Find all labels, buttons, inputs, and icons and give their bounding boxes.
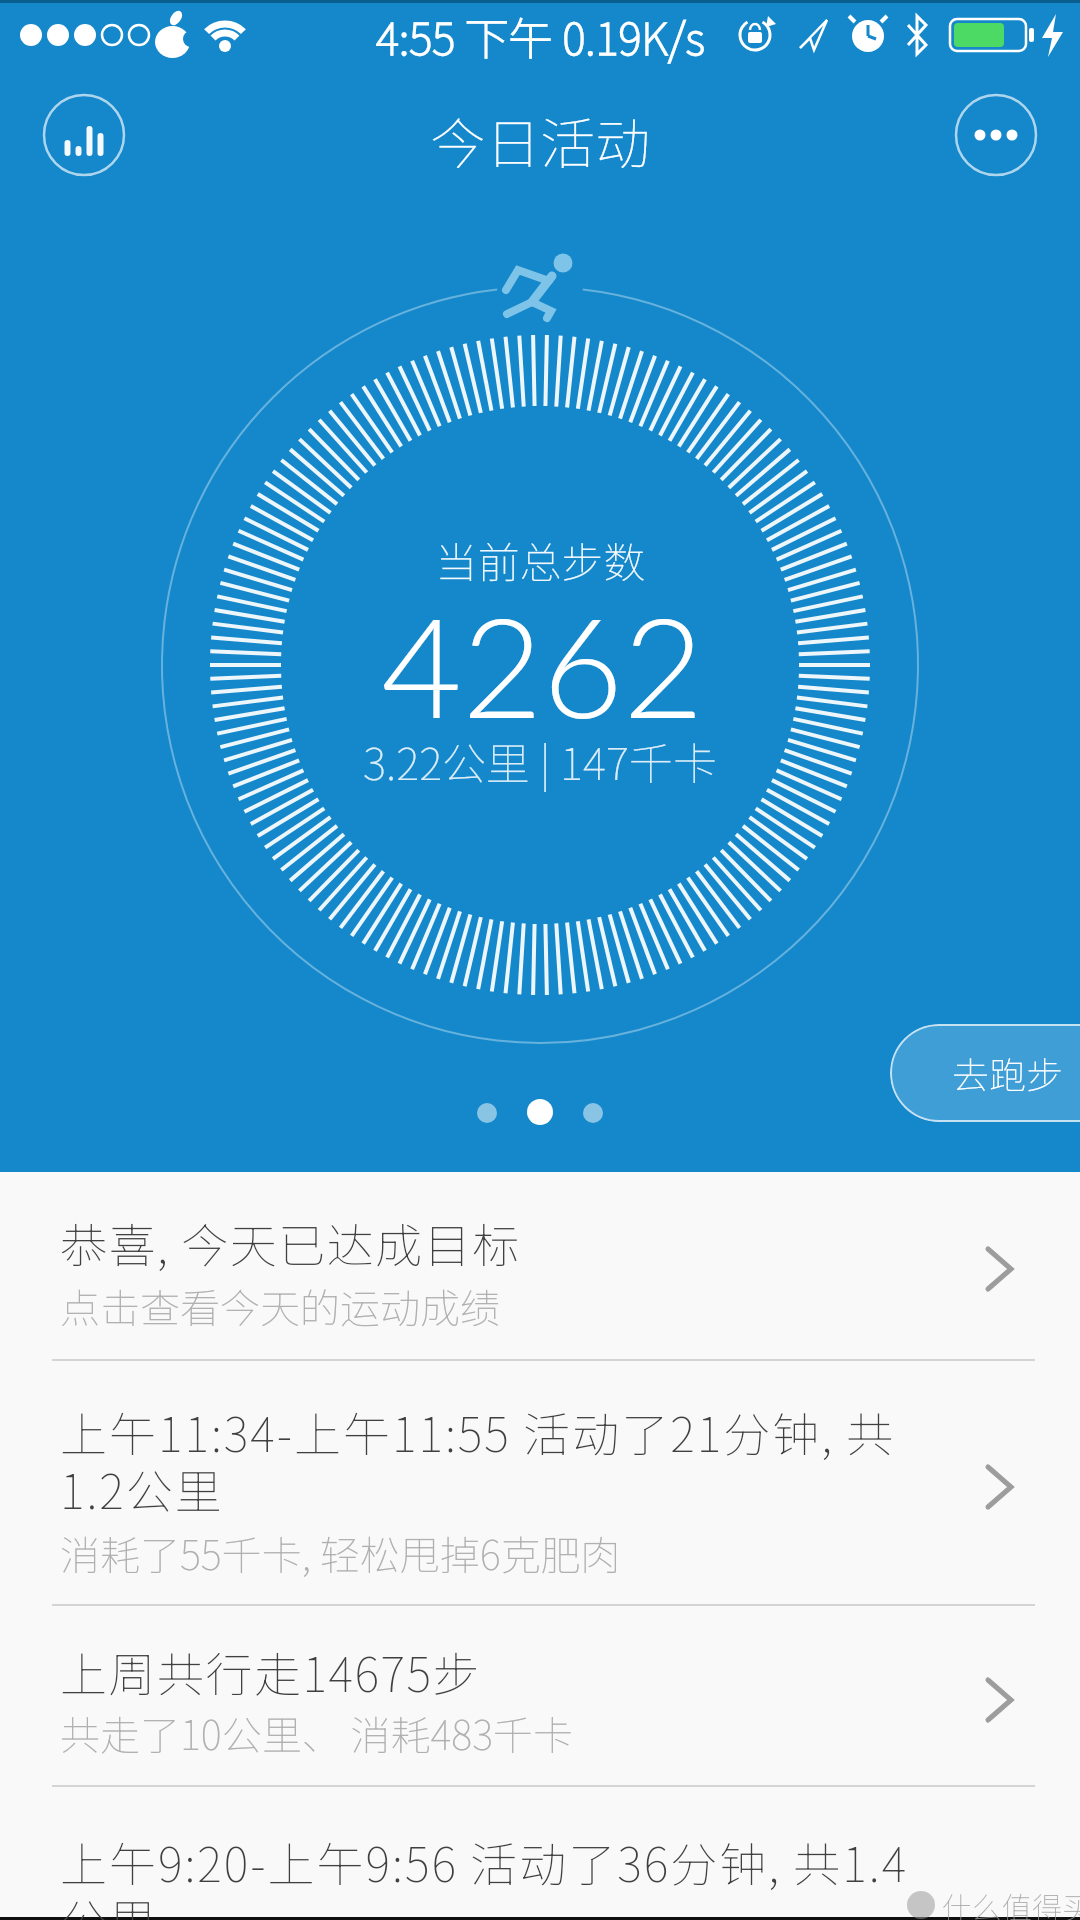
staticText: 恭喜, 今天已达成目标 [60,1208,521,1276]
staticText: 上午9:20-上午9:56 活动了36分钟, 共1.4 公里 [60,1827,909,1920]
button[interactable] [0,1606,1080,1786]
staticText: 今日活动 [430,100,651,180]
staticText: 消耗了55千卡, 轻松甩掉6克肥肉 [60,1524,621,1582]
staticText: 什么值得买 [942,1884,1080,1920]
staticText: 共走了10公里、 消耗483千卡 [60,1704,573,1762]
staticText: 上午11:34-上午11:55 活动了21分钟, 共 1.2公里 [60,1397,896,1523]
staticText: 点击查看今天的运动成绩 [60,1277,500,1335]
button[interactable] [0,1361,1080,1605]
staticText: 3.22公里 | 147千卡 [363,729,717,793]
button[interactable] [0,1172,1080,1360]
staticText: 当前总步数 [435,529,646,590]
staticText: 上周共行走14675步 [60,1637,481,1705]
button[interactable] [0,1787,1080,1920]
button[interactable] [42,93,126,177]
staticText: 去跑步 [952,1046,1063,1100]
button[interactable]: 去跑步 [890,1024,1080,1122]
button[interactable] [954,93,1038,177]
staticText: 4262 [381,581,704,748]
staticText: 4:55 下午 0.19K/s [376,4,705,68]
